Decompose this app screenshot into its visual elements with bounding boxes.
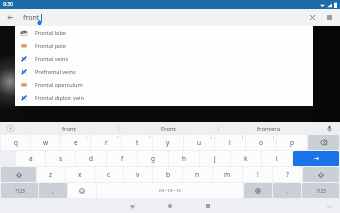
- staticText: ?123: [15, 188, 25, 194]
- staticText: Frontal diploic vein: [35, 94, 84, 101]
- button[interactable]: Settings: [244, 183, 272, 198]
- staticText: ^: [117, 135, 120, 140]
- staticText: Frontal veins: [35, 55, 69, 62]
- button[interactable]: Front: [119, 122, 218, 135]
- button[interactable]: Frontal pole: [15, 39, 313, 52]
- staticText: b: [166, 170, 170, 179]
- staticText: x: [78, 170, 82, 179]
- staticText: q: [14, 138, 18, 147]
- staticText: c: [107, 170, 111, 179]
- staticText: h: [182, 154, 187, 163]
- button[interactable]: Voice input: [318, 122, 340, 135]
- button[interactable]: k: [231, 151, 261, 166]
- staticText: o: [259, 138, 263, 147]
- button[interactable]: h: [169, 151, 199, 166]
- button[interactable]: g: [138, 151, 168, 166]
- button[interactable]: r: [91, 135, 121, 150]
- staticText: Front: [161, 125, 176, 133]
- button[interactable]: Expand toolbar: [0, 122, 20, 135]
- button[interactable]: d: [76, 151, 106, 166]
- staticText: z: [49, 170, 53, 179]
- button[interactable]: Frontal operculum: [15, 78, 313, 91]
- button[interactable]: e: [61, 135, 90, 150]
- button[interactable]: b: [153, 167, 182, 182]
- button[interactable]: Back: [120, 199, 144, 213]
- button[interactable]: frontera: [219, 122, 318, 135]
- staticText: k: [244, 154, 248, 163]
- staticText: e: [74, 138, 78, 147]
- button[interactable]: t: [122, 135, 152, 150]
- staticText: EN • DE • ES: [159, 188, 181, 193]
- staticText: t: [136, 138, 139, 147]
- button[interactable]: m: [213, 167, 242, 182]
- staticText: j: [214, 154, 216, 163]
- button[interactable]: j: [200, 151, 230, 166]
- staticText: ´: [28, 135, 29, 140]
- button[interactable]: Emoji: [68, 183, 96, 198]
- staticText: a: [29, 154, 33, 163]
- staticText: front: [62, 125, 76, 133]
- button[interactable]: Prefrontal veins: [15, 65, 313, 78]
- staticText: !: [257, 170, 259, 179]
- staticText: ?: [286, 170, 289, 179]
- staticText: -: [180, 135, 182, 140]
- staticText: i: [229, 138, 231, 147]
- staticText: Frontal operculum: [35, 81, 83, 88]
- button[interactable]: a: [16, 151, 45, 166]
- button[interactable]: ?: [273, 167, 302, 182]
- staticText: g: [151, 154, 155, 163]
- button[interactable]: ?123: [1, 183, 38, 198]
- button[interactable]: o: [246, 135, 276, 150]
- button[interactable]: Frontal diploic vein: [15, 91, 313, 104]
- button[interactable]: n: [183, 167, 212, 182]
- button[interactable]: EN • DE • ES: [97, 183, 243, 198]
- button[interactable]: l: [262, 151, 292, 166]
- button[interactable]: x: [66, 167, 94, 182]
- button[interactable]: More options: [323, 11, 336, 24]
- button[interactable]: Clear: [306, 11, 319, 24]
- button[interactable]: Shift: [303, 167, 339, 182]
- button[interactable]: u: [184, 135, 214, 150]
- staticText: .: [286, 187, 288, 195]
- button[interactable]: front: [23, 9, 306, 26]
- button[interactable]: Backspace: [308, 135, 339, 150]
- staticText: p: [290, 138, 294, 147]
- button[interactable]: i: [215, 135, 245, 150]
- button[interactable]: Recents: [196, 199, 220, 213]
- staticText: ]: [273, 135, 275, 140]
- button[interactable]: q: [1, 135, 30, 150]
- button[interactable]: y: [153, 135, 183, 150]
- button[interactable]: Hide keyboard: [324, 201, 334, 211]
- staticText: f: [121, 154, 124, 163]
- staticText: d: [89, 154, 93, 163]
- staticText: ~: [86, 135, 89, 140]
- staticText: front: [23, 13, 40, 23]
- staticText: frontera: [257, 125, 281, 133]
- staticText: [: [242, 135, 244, 140]
- button[interactable]: p: [277, 135, 307, 150]
- button[interactable]: !: [243, 167, 272, 182]
- staticText: =: [210, 135, 213, 140]
- button[interactable]: f: [107, 151, 137, 166]
- staticText: Frontal lobe: [35, 29, 66, 36]
- button[interactable]: Shift: [1, 167, 36, 182]
- staticText: r: [105, 138, 108, 147]
- button[interactable]: Back: [4, 11, 17, 24]
- button[interactable]: Home: [158, 199, 182, 213]
- button[interactable]: s: [46, 151, 75, 166]
- button[interactable]: front: [20, 122, 118, 135]
- staticText: v: [136, 170, 140, 179]
- button[interactable]: Frontal lobe: [15, 26, 313, 39]
- button[interactable]: Frontal veins: [15, 52, 313, 65]
- button[interactable]: c: [95, 167, 123, 182]
- button[interactable]: v: [124, 167, 152, 182]
- staticText: m: [224, 170, 231, 179]
- staticText: °: [149, 135, 151, 140]
- button[interactable]: z: [37, 167, 65, 182]
- button[interactable]: w: [31, 135, 60, 150]
- button[interactable]: Enter: [293, 151, 339, 166]
- button[interactable]: ?123: [302, 183, 339, 198]
- staticText: Frontal pole: [35, 42, 66, 49]
